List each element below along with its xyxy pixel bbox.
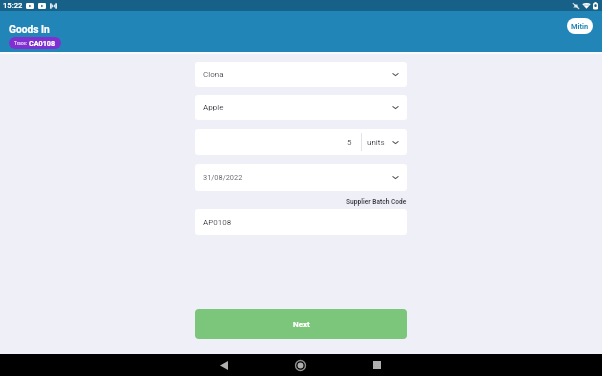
button[interactable]: Recent apps xyxy=(367,355,387,375)
button[interactable]: AP0108 xyxy=(195,209,407,235)
button[interactable]: Clona xyxy=(195,62,407,87)
button[interactable]: 31/08/2022 xyxy=(195,164,407,191)
staticText: Goods In xyxy=(9,24,50,36)
button[interactable]: Next xyxy=(195,309,407,339)
staticText: 15:22 xyxy=(3,1,23,10)
staticText: 31/08/2022 xyxy=(203,173,243,182)
button[interactable]: Home xyxy=(290,355,310,375)
button[interactable]: 5 xyxy=(195,129,407,155)
staticText: AP0108 xyxy=(203,218,232,227)
staticText: Trace: xyxy=(14,41,27,46)
staticText: Mitin xyxy=(571,22,589,31)
staticText: Next xyxy=(293,320,310,329)
staticText: Supplier Batch Code xyxy=(346,198,407,206)
staticText: Clona xyxy=(203,70,224,79)
button[interactable]: Trace: xyxy=(14,37,56,49)
button[interactable]: Back xyxy=(214,355,234,375)
staticText: Apple xyxy=(203,103,224,112)
staticText: CA0108 xyxy=(29,39,56,47)
button[interactable]: Mitin xyxy=(567,18,593,34)
staticText: 5 xyxy=(347,138,352,147)
button[interactable]: Apple xyxy=(195,95,407,120)
staticText: units xyxy=(367,138,385,147)
